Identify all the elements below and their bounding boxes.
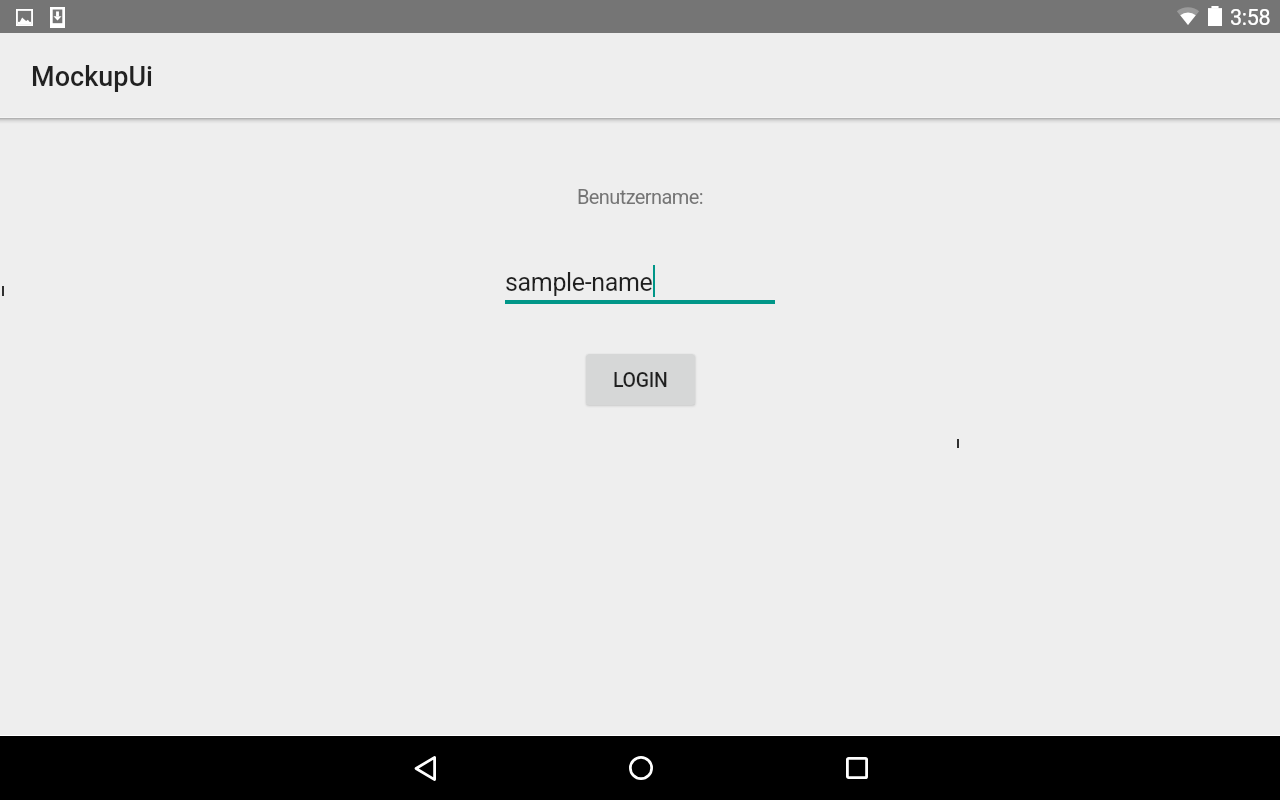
button[interactable]: Recent apps — [824, 736, 889, 800]
staticText: MockupUi — [31, 61, 153, 93]
button[interactable]: Back — [392, 736, 457, 800]
button[interactable]: LOGIN — [586, 354, 695, 405]
staticText: 3:58 — [1230, 5, 1271, 30]
button[interactable]: Screenshot — [13, 6, 35, 28]
button[interactable]: sample-name — [505, 267, 775, 299]
button[interactable]: Home — [608, 736, 673, 800]
button[interactable]: Save to device — [46, 6, 68, 28]
staticText: sample-name — [505, 268, 653, 297]
staticText: Benutzername: — [577, 185, 703, 208]
staticText: LOGIN — [613, 369, 668, 392]
